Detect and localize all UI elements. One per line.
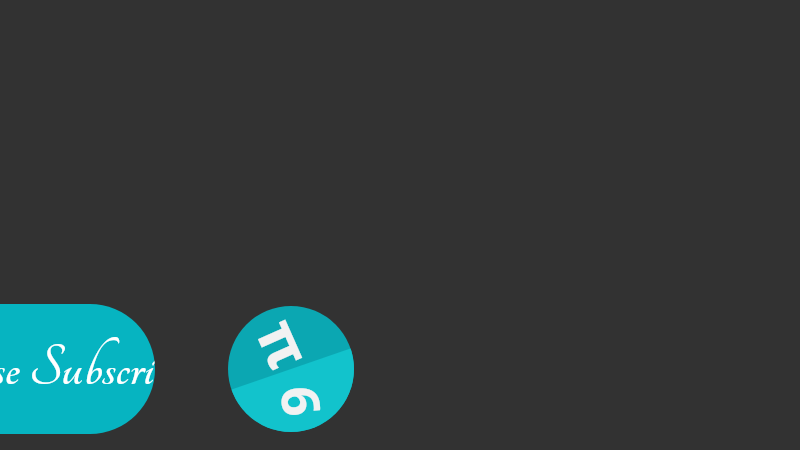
staticText: π (249, 306, 331, 375)
button[interactable]: π (228, 306, 354, 432)
staticText: 6 (267, 383, 339, 419)
button[interactable]: Please Subscribe (0, 304, 155, 434)
staticText: Please Subscribe (0, 337, 155, 400)
